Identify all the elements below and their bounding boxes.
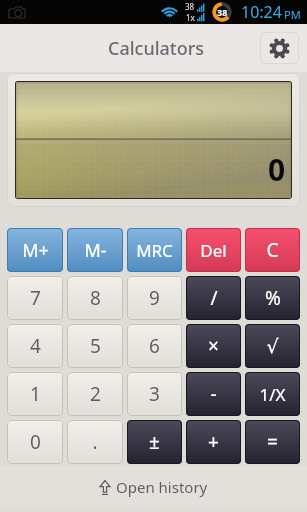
staticText: ± <box>149 429 160 455</box>
staticText: = <box>267 429 278 455</box>
staticText: √ <box>266 335 279 357</box>
button[interactable]: 1/X <box>245 372 300 416</box>
button[interactable]: × <box>186 324 241 368</box>
button[interactable]: 9 <box>127 276 182 320</box>
staticText: 6 <box>149 333 160 359</box>
staticText: 10:24 <box>241 1 282 23</box>
staticText: 1/X <box>259 383 286 406</box>
staticText: 4 <box>30 333 41 359</box>
button[interactable]: / <box>186 276 241 320</box>
button[interactable]: 8 <box>67 276 123 320</box>
staticText: . <box>92 429 98 455</box>
button[interactable]: C <box>245 228 300 272</box>
staticText: % <box>265 285 281 311</box>
staticText: 3 <box>149 381 160 407</box>
staticText: Del <box>200 239 227 262</box>
staticText: + <box>208 429 219 455</box>
button[interactable]: . <box>67 420 123 464</box>
button[interactable]: MRC <box>127 228 182 272</box>
staticText: 5 <box>90 333 101 359</box>
button[interactable]: ± <box>127 420 182 464</box>
button[interactable]: 5 <box>67 324 123 368</box>
staticText: C <box>266 237 279 263</box>
button[interactable]: % <box>245 276 300 320</box>
staticText: M- <box>84 238 107 263</box>
button[interactable]: Settings <box>260 32 299 64</box>
button[interactable]: Del <box>186 228 241 272</box>
button[interactable]: 0 <box>7 420 63 464</box>
staticText: × <box>208 333 219 359</box>
staticText: 0 <box>30 429 41 455</box>
button[interactable]: Open history <box>0 466 307 508</box>
staticText: 38 <box>185 1 195 12</box>
button[interactable]: M+ <box>7 228 63 272</box>
button[interactable]: 7 <box>7 276 63 320</box>
staticText: / <box>210 285 218 311</box>
staticText: 0 <box>268 149 286 190</box>
button[interactable]: = <box>245 420 300 464</box>
staticText: M+ <box>22 238 49 263</box>
button[interactable]: 4 <box>7 324 63 368</box>
button[interactable]: √ <box>245 324 300 368</box>
button[interactable]: - <box>186 372 241 416</box>
staticText: Calculators <box>108 36 205 61</box>
staticText: 9 <box>149 285 160 311</box>
staticText: 1x <box>186 12 195 23</box>
staticText: 38 <box>217 6 228 18</box>
staticText: Open history <box>116 477 208 497</box>
staticText: 2 <box>90 381 101 407</box>
button[interactable]: + <box>186 420 241 464</box>
button[interactable]: 3 <box>127 372 182 416</box>
staticText: PM <box>284 7 301 22</box>
staticText: 7 <box>30 285 41 311</box>
button[interactable]: M- <box>67 228 123 272</box>
staticText: 1 <box>30 381 41 407</box>
staticText: MRC <box>136 239 173 262</box>
staticText: 8 <box>90 285 101 311</box>
button[interactable]: 6 <box>127 324 182 368</box>
button[interactable]: 2 <box>67 372 123 416</box>
button[interactable]: 1 <box>7 372 63 416</box>
staticText: - <box>210 381 217 407</box>
